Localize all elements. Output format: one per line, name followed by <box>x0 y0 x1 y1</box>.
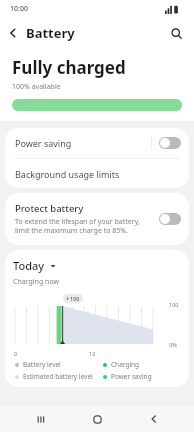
staticText: Charging <box>111 360 140 369</box>
button[interactable]: Toggle <box>159 213 181 225</box>
button[interactable]: Protect battery <box>5 193 189 245</box>
button[interactable]: Recent apps <box>23 406 57 432</box>
staticText: Today <box>13 258 45 273</box>
button[interactable]: Background usage limits <box>5 159 189 188</box>
staticText: 0 <box>14 350 18 357</box>
button[interactable]: Back <box>0 20 26 46</box>
staticText: Power saving <box>15 137 151 149</box>
button[interactable]: Today <box>13 258 56 273</box>
button[interactable]: Back <box>137 406 171 432</box>
staticText: Protect battery <box>15 202 84 215</box>
staticText: Power saving <box>111 372 152 381</box>
staticText: 100 <box>169 301 179 308</box>
staticText: 10:00 <box>10 4 28 14</box>
staticText: Charging now <box>13 277 59 287</box>
button[interactable]: Power saving <box>5 128 189 158</box>
button[interactable]: Toggle <box>159 137 181 149</box>
staticText: 12 <box>89 350 96 357</box>
staticText: Background usage limits <box>15 168 120 180</box>
button[interactable]: Home <box>80 406 114 432</box>
button[interactable]: Search <box>164 21 188 45</box>
staticText: 100 <box>70 295 80 302</box>
staticText: Estimated battery level <box>23 372 93 381</box>
staticText: To extend the lifespan of your battery, … <box>15 217 153 235</box>
staticText: Battery <box>26 24 75 42</box>
staticText: 0% <box>169 341 177 348</box>
staticText: Fully charged <box>12 56 126 79</box>
staticText: Battery level <box>23 360 61 369</box>
staticText: 100% available <box>12 82 61 92</box>
